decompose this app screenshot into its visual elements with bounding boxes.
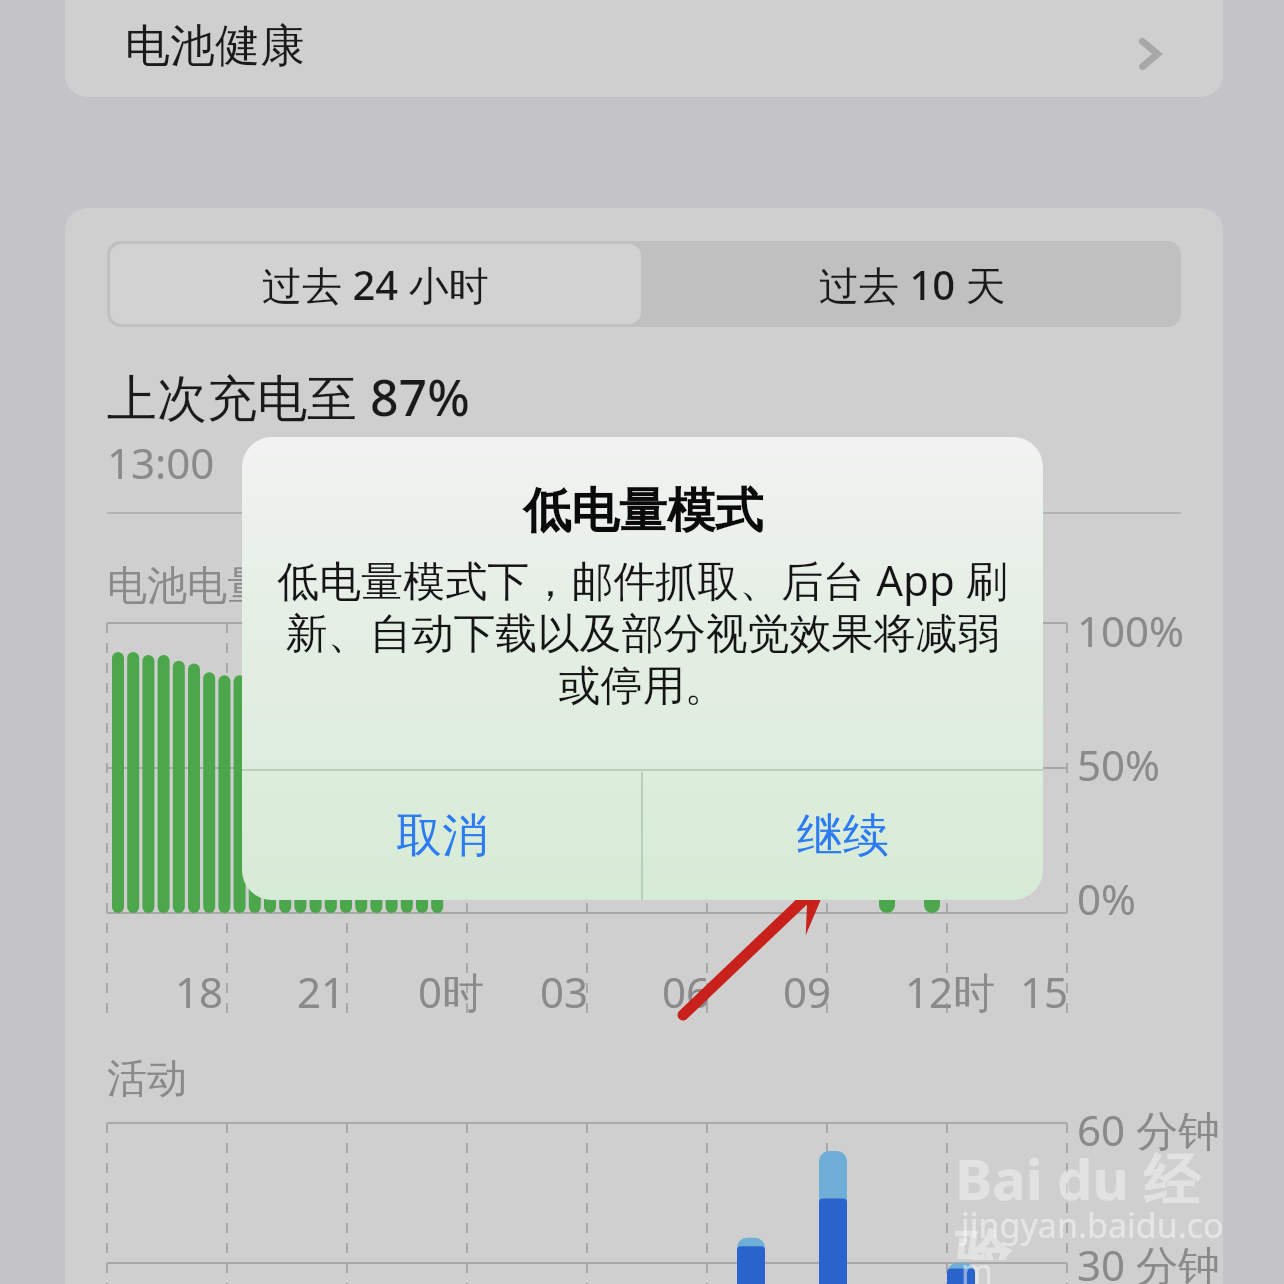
staticText: 09 — [783, 963, 832, 1020]
staticText: 取消 — [396, 807, 488, 865]
button[interactable]: 取消 — [242, 772, 641, 900]
staticText: 21 — [297, 963, 346, 1020]
staticText: 过去 10 天 — [819, 257, 1006, 312]
staticText: 03 — [540, 963, 589, 1020]
button[interactable]: 过去 10 天 — [644, 241, 1181, 327]
staticText: 0% — [1077, 870, 1136, 927]
button[interactable]: 过去 24 小时 — [110, 244, 641, 324]
staticText: 06 — [662, 963, 711, 1020]
staticText: 13:00 — [107, 434, 215, 491]
staticText: 15 — [1020, 963, 1069, 1020]
staticText: 上次充电至 87% — [107, 363, 470, 431]
staticText: 过去 24 小时 — [262, 257, 489, 312]
staticText: 电池电量 — [107, 560, 267, 610]
other: 前往电池健康 — [1135, 39, 1165, 69]
staticText: 18 — [175, 963, 224, 1020]
staticText: 60 分钟 — [1077, 1101, 1220, 1158]
staticText: 低电量模式下，邮件抓取、后台 App 刷新、自动下载以及部分视觉效果将减弱或停用… — [272, 551, 1013, 712]
staticText: 50% — [1077, 736, 1160, 793]
staticText: 电池健康 — [125, 18, 305, 75]
staticText: 12时 — [905, 963, 996, 1020]
staticText: 0时 — [418, 963, 485, 1020]
staticText: 活动 — [107, 1053, 187, 1103]
staticText: 30 分钟 — [1077, 1236, 1220, 1284]
staticText: 100% — [1077, 602, 1184, 659]
staticText: jingyan.baidu.com — [961, 1202, 1241, 1284]
staticText: 低电量模式 — [523, 481, 763, 541]
staticText: Bai du 经验 — [955, 1140, 1235, 1260]
button[interactable]: 电池健康 — [65, 0, 1223, 97]
staticText: 继续 — [797, 807, 889, 865]
button[interactable]: 继续 — [643, 772, 1043, 900]
